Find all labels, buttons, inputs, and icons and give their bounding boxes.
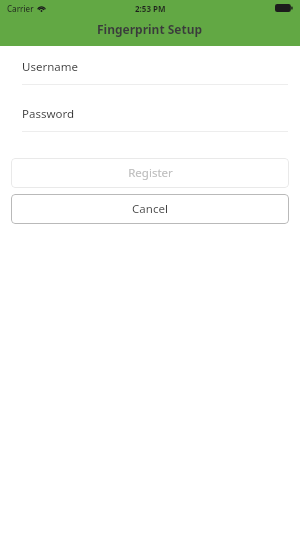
button[interactable]: Password (0, 106, 300, 132)
staticText: Password (22, 106, 75, 122)
staticText: Cancel (132, 201, 168, 217)
button[interactable]: Cancel (11, 194, 289, 224)
button[interactable]: Username (0, 59, 300, 85)
staticText: Fingerprint Setup (97, 21, 203, 37)
staticText: 2:53 PM (135, 3, 166, 14)
staticText: Username (22, 59, 78, 75)
button[interactable]: Register (11, 158, 289, 188)
staticText: Register (128, 165, 173, 181)
staticText: Carrier (7, 3, 34, 14)
